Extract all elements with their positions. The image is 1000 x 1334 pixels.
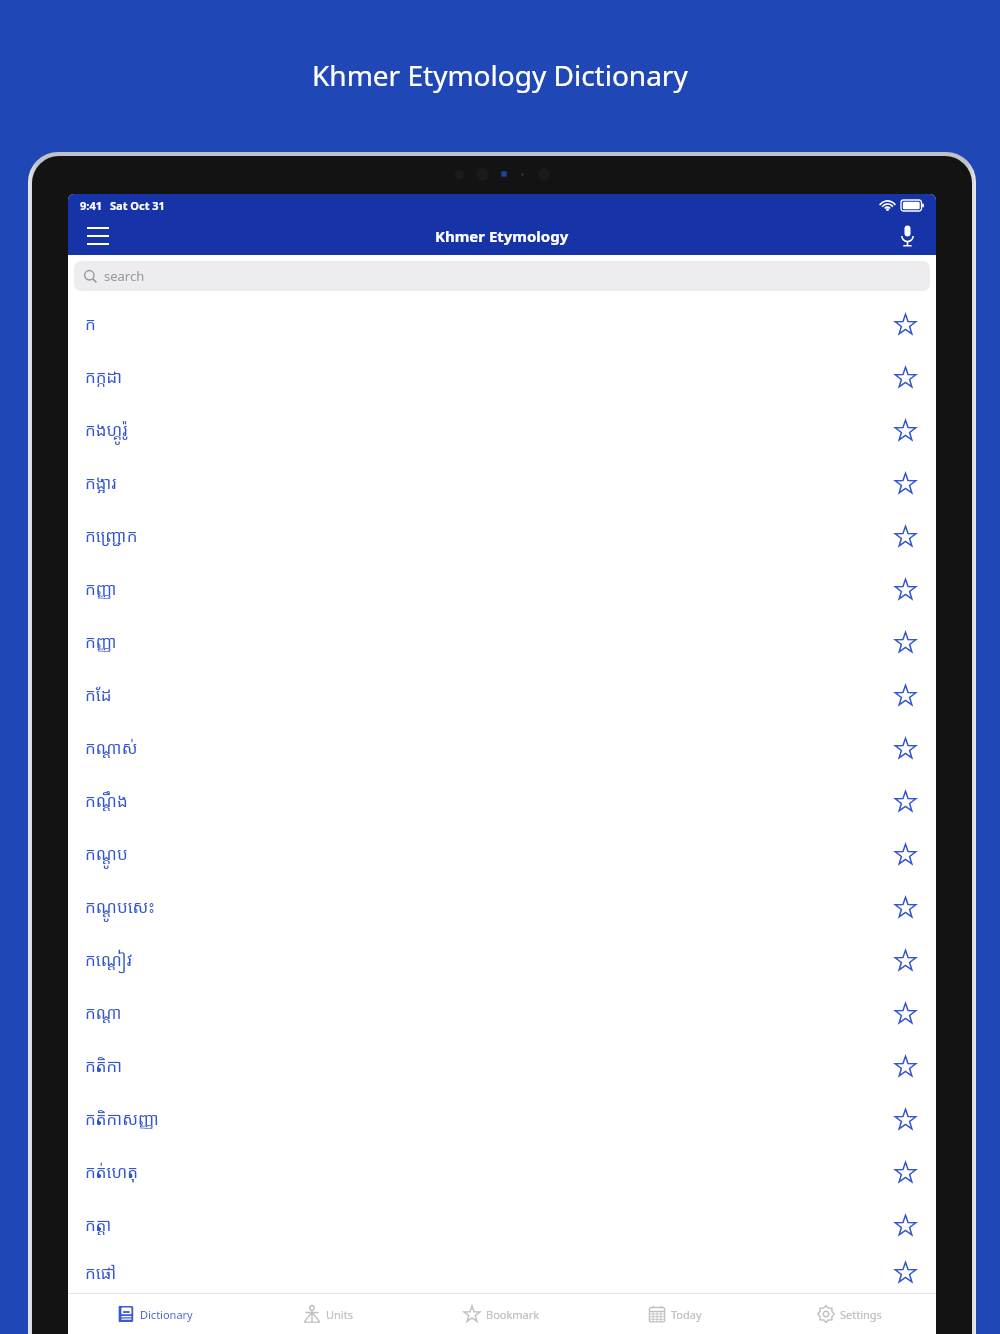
staticText: Bookmark [486, 1307, 540, 1322]
staticText: កណ្ដូបសេះ [85, 895, 155, 918]
button[interactable]: កត់ហេតុ [68, 1145, 936, 1198]
staticText: កណ្ដូប [85, 842, 128, 865]
button[interactable]: កណ្ដាស់ [68, 721, 936, 774]
button[interactable]: Bookmark [888, 519, 922, 553]
staticText: កត្តា [85, 1213, 112, 1236]
button[interactable]: Bookmark [414, 1294, 588, 1334]
button[interactable]: កក្កដា [68, 350, 936, 403]
button[interactable]: Bookmark [888, 1102, 922, 1136]
button[interactable]: កដែ [68, 668, 936, 721]
button[interactable]: កណ្ដៀវ [68, 933, 936, 986]
button[interactable]: Bookmark [888, 466, 922, 500]
button[interactable]: កញ្ជ្រោក [68, 509, 936, 562]
button[interactable]: Bookmark [888, 625, 922, 659]
staticText: កណ្ដឹង [85, 789, 128, 812]
staticText: កផៅ [85, 1261, 117, 1284]
staticText: 9:41 [80, 198, 102, 213]
button[interactable]: Bookmark [888, 943, 922, 977]
staticText: កណ្ដាស់ [85, 736, 138, 759]
staticText: កញ្ញា [85, 577, 117, 600]
staticText: កតិកាសញ្ញា [85, 1107, 160, 1130]
button[interactable]: កតិកាសញ្ញា [68, 1092, 936, 1145]
button[interactable]: កណ្ដូបសេះ [68, 880, 936, 933]
button[interactable]: កតិកា [68, 1039, 936, 1092]
button[interactable]: search [74, 261, 930, 291]
staticText: Today [671, 1307, 702, 1322]
staticText: កញ្ញា [85, 630, 117, 653]
button[interactable]: Bookmark [888, 890, 922, 924]
staticText: កងហ្គូរ៉ូ [85, 418, 128, 441]
button[interactable]: Dictionary [68, 1294, 241, 1334]
button[interactable]: Bookmark [888, 360, 922, 394]
staticText: Khmer Etymology [435, 226, 569, 246]
staticText: កក្កដា [85, 365, 123, 388]
button[interactable]: Bookmark [888, 413, 922, 447]
button[interactable]: Bookmark [888, 731, 922, 765]
button[interactable]: កណ្ដូប [68, 827, 936, 880]
button[interactable]: Settings [762, 1294, 936, 1334]
button[interactable]: Bookmark [888, 1255, 922, 1289]
staticText: កដែ [85, 683, 112, 706]
button[interactable]: កញ្ញា [68, 615, 936, 668]
button[interactable]: Bookmark [888, 307, 922, 341]
button[interactable]: កណ្ដា [68, 986, 936, 1039]
staticText: Sat Oct 31 [110, 198, 165, 213]
staticText: កត់ហេតុ [85, 1160, 139, 1183]
staticText: search [104, 267, 145, 285]
staticText: កណ្ដា [85, 1001, 122, 1024]
button[interactable]: Today [588, 1294, 762, 1334]
button[interactable]: Bookmark [888, 572, 922, 606]
button[interactable]: Bookmark [888, 784, 922, 818]
staticText: កញ្ជ្រោក [85, 524, 138, 547]
button[interactable]: Bookmark [888, 1049, 922, 1083]
button[interactable]: Bookmark [888, 1208, 922, 1242]
staticText: ក [85, 312, 96, 335]
button[interactable]: Menu [80, 218, 116, 254]
button[interactable]: Bookmark [888, 837, 922, 871]
staticText: កណ្ដៀវ [85, 948, 133, 971]
button[interactable]: កផៅ [68, 1251, 936, 1293]
button[interactable]: Units [241, 1294, 414, 1334]
staticText: កង្អារ [85, 471, 117, 494]
button[interactable]: Bookmark [888, 678, 922, 712]
staticText: កតិកា [85, 1054, 123, 1077]
button[interactable]: កង្អារ [68, 456, 936, 509]
button[interactable]: កញ្ញា [68, 562, 936, 615]
button[interactable]: Voice search [890, 219, 924, 253]
staticText: Khmer Etymology Dictionary [312, 56, 688, 94]
staticText: Settings [840, 1307, 882, 1322]
button[interactable]: កត្តា [68, 1198, 936, 1251]
button[interactable]: Bookmark [888, 996, 922, 1030]
button[interactable]: Bookmark [888, 1155, 922, 1189]
button[interactable]: កណ្ដឹង [68, 774, 936, 827]
button[interactable]: ក [68, 297, 936, 350]
staticText: Units [326, 1307, 353, 1322]
staticText: Dictionary [140, 1307, 193, 1322]
button[interactable]: កងហ្គូរ៉ូ [68, 403, 936, 456]
